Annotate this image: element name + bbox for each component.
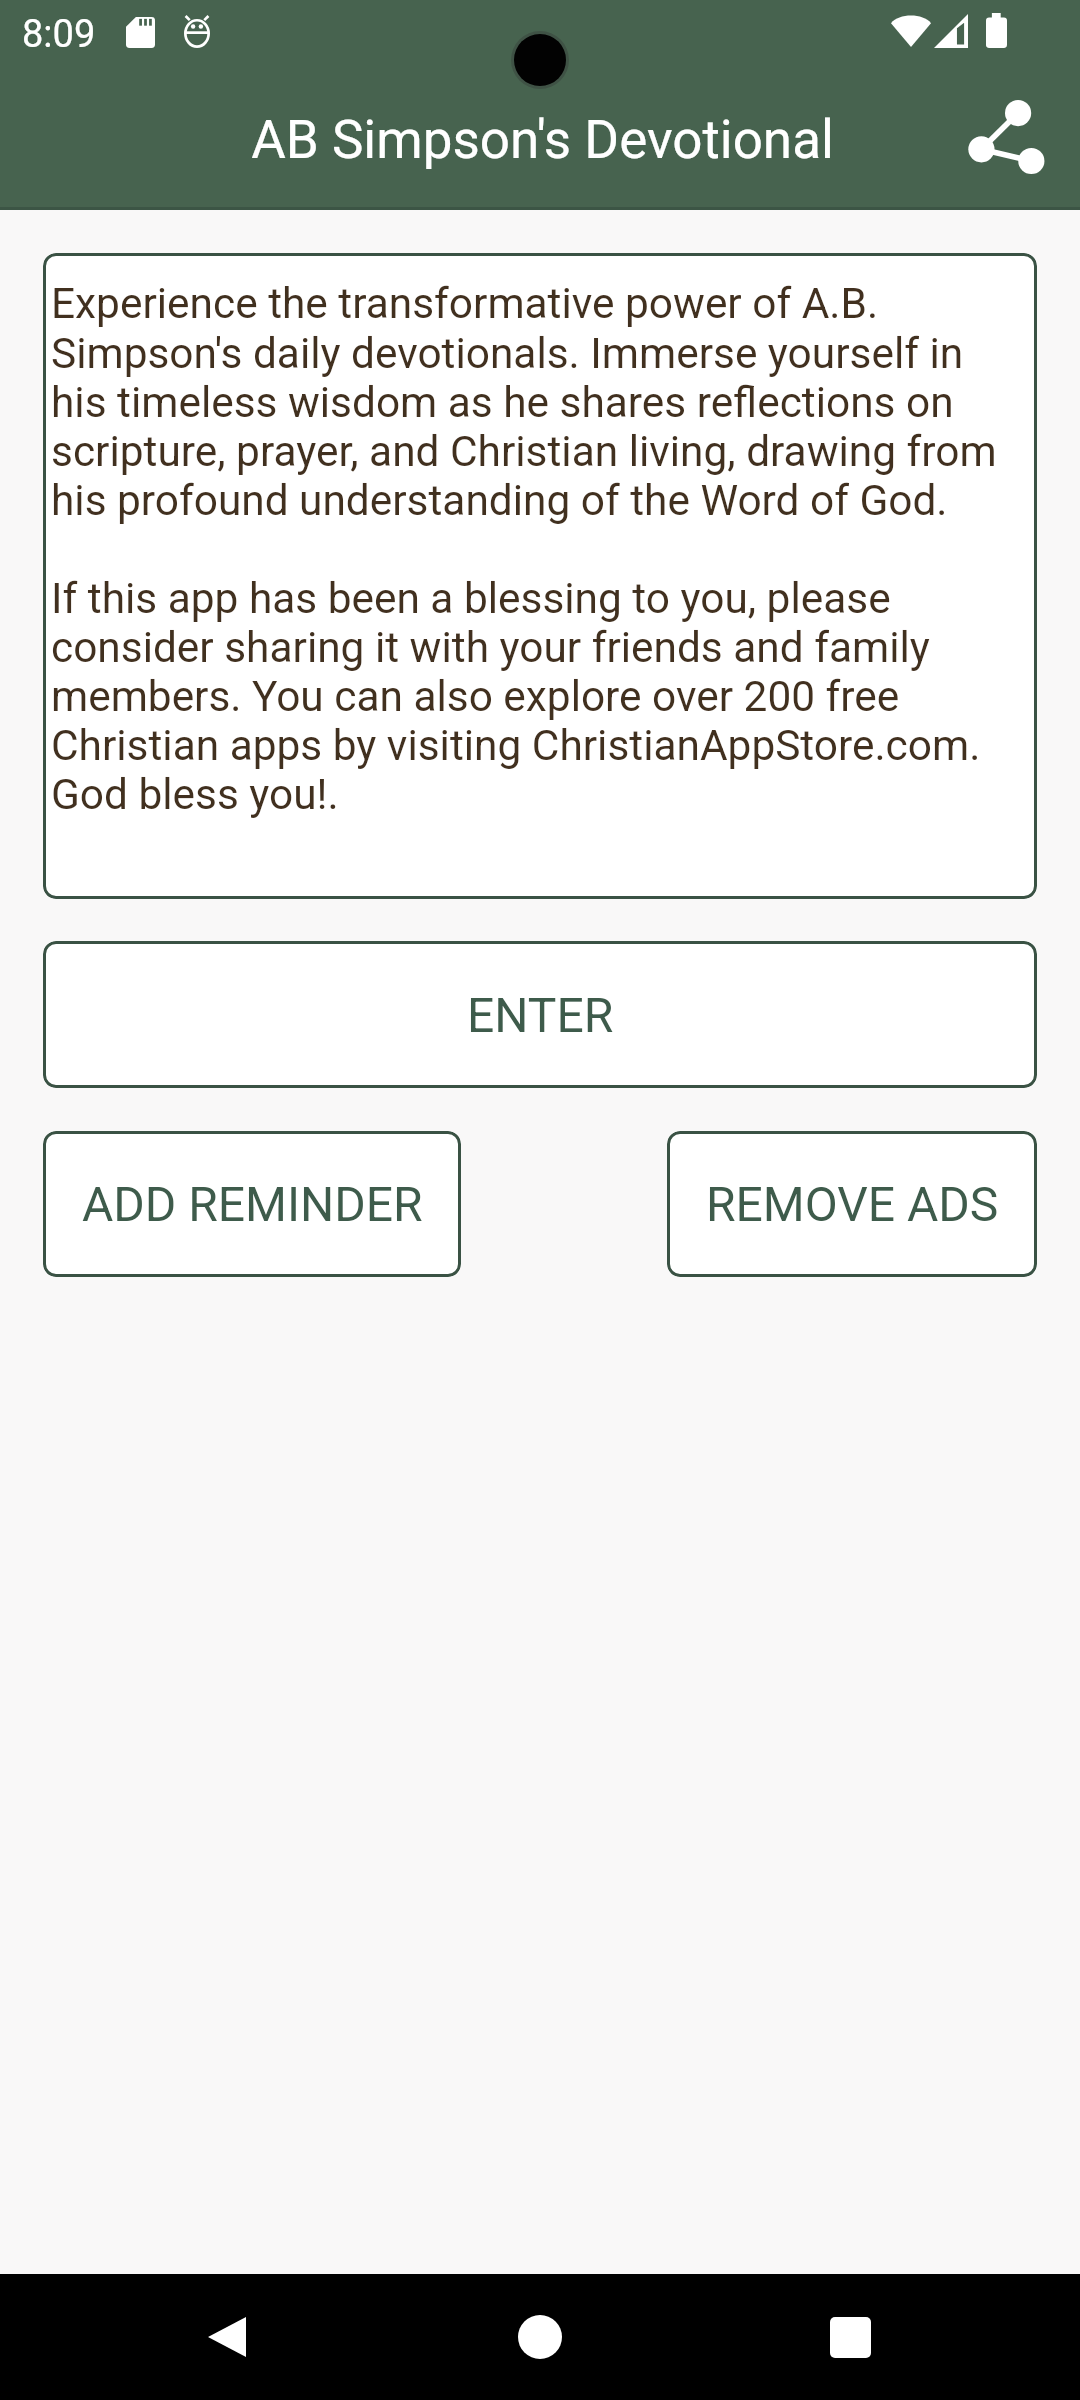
staticText: AB Simpson's Devotional (251, 109, 834, 171)
button[interactable]: Back (172, 2282, 282, 2392)
staticText: Experience the transformative power of A… (51, 279, 1029, 819)
button[interactable]: ADD REMINDER (43, 1131, 461, 1277)
button[interactable]: Share (955, 87, 1057, 189)
button[interactable]: ENTER (43, 941, 1037, 1088)
button[interactable]: REMOVE ADS (667, 1131, 1037, 1277)
staticText: REMOVE ADS (706, 1176, 999, 1232)
button[interactable]: Recents (795, 2282, 905, 2392)
staticText: ENTER (467, 987, 614, 1043)
staticText: 8:09 (22, 12, 96, 57)
staticText: ADD REMINDER (82, 1176, 423, 1232)
button[interactable]: Home (485, 2282, 595, 2392)
